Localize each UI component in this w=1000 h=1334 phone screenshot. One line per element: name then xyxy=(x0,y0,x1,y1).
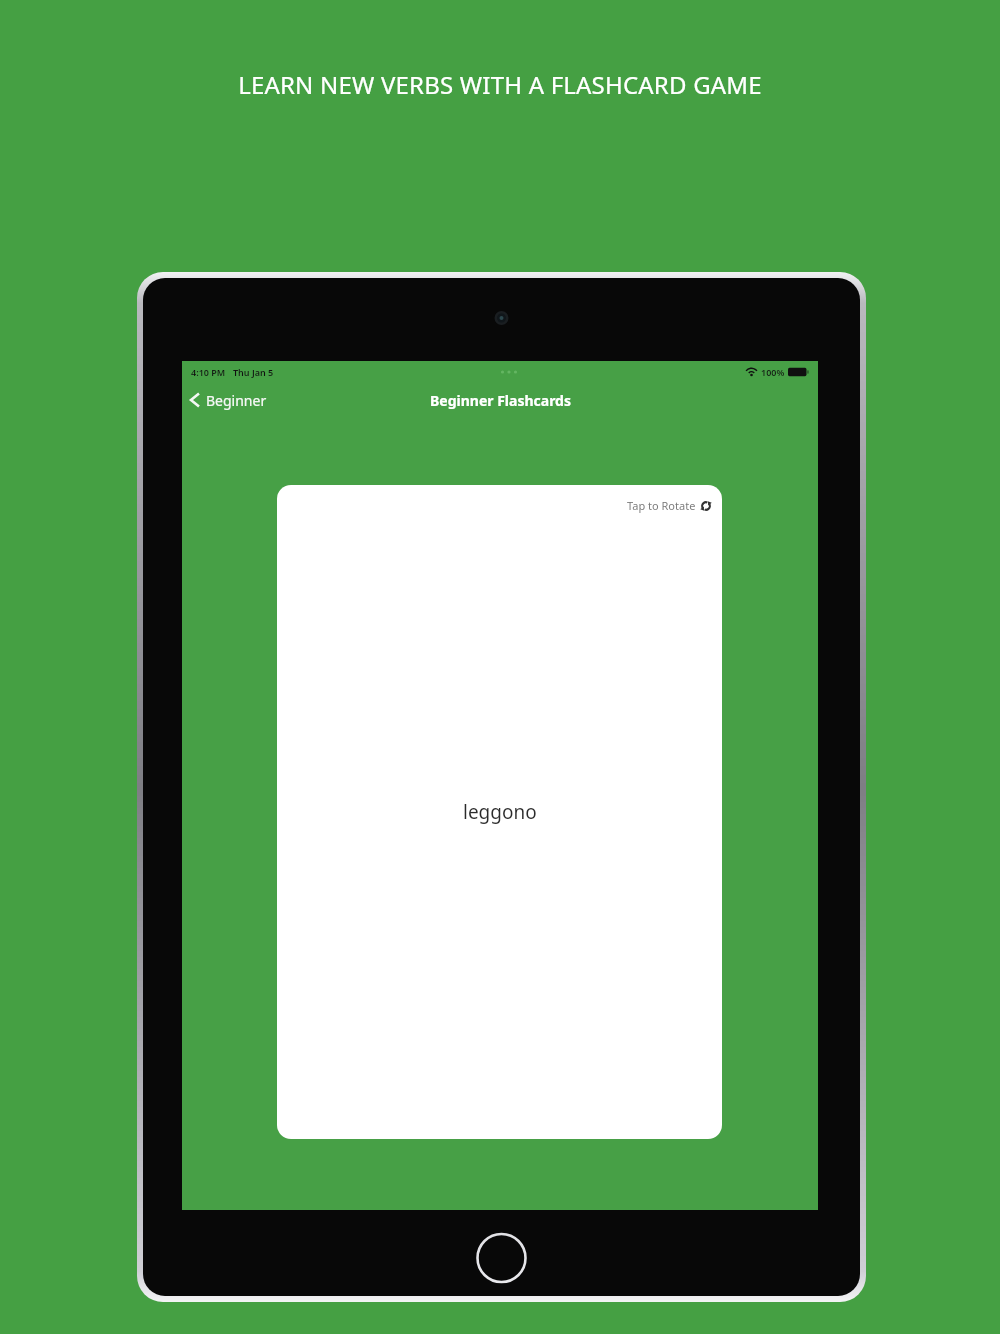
staticText: Beginner Flashcards xyxy=(430,391,571,410)
staticText: Tap to Rotate xyxy=(627,498,696,513)
button[interactable]: Tap to Rotate xyxy=(277,485,722,1139)
staticText: Thu Jan 5 xyxy=(233,366,274,378)
button[interactable]: Beginner xyxy=(182,382,279,418)
staticText: 100% xyxy=(761,366,785,378)
staticText: leggono xyxy=(463,799,537,825)
staticText: 4:10 PM xyxy=(191,366,226,378)
staticText: Beginner xyxy=(206,391,267,410)
other: Rotate card xyxy=(700,500,712,512)
staticText: LEARN NEW VERBS WITH A FLASHCARD GAME xyxy=(238,68,762,101)
